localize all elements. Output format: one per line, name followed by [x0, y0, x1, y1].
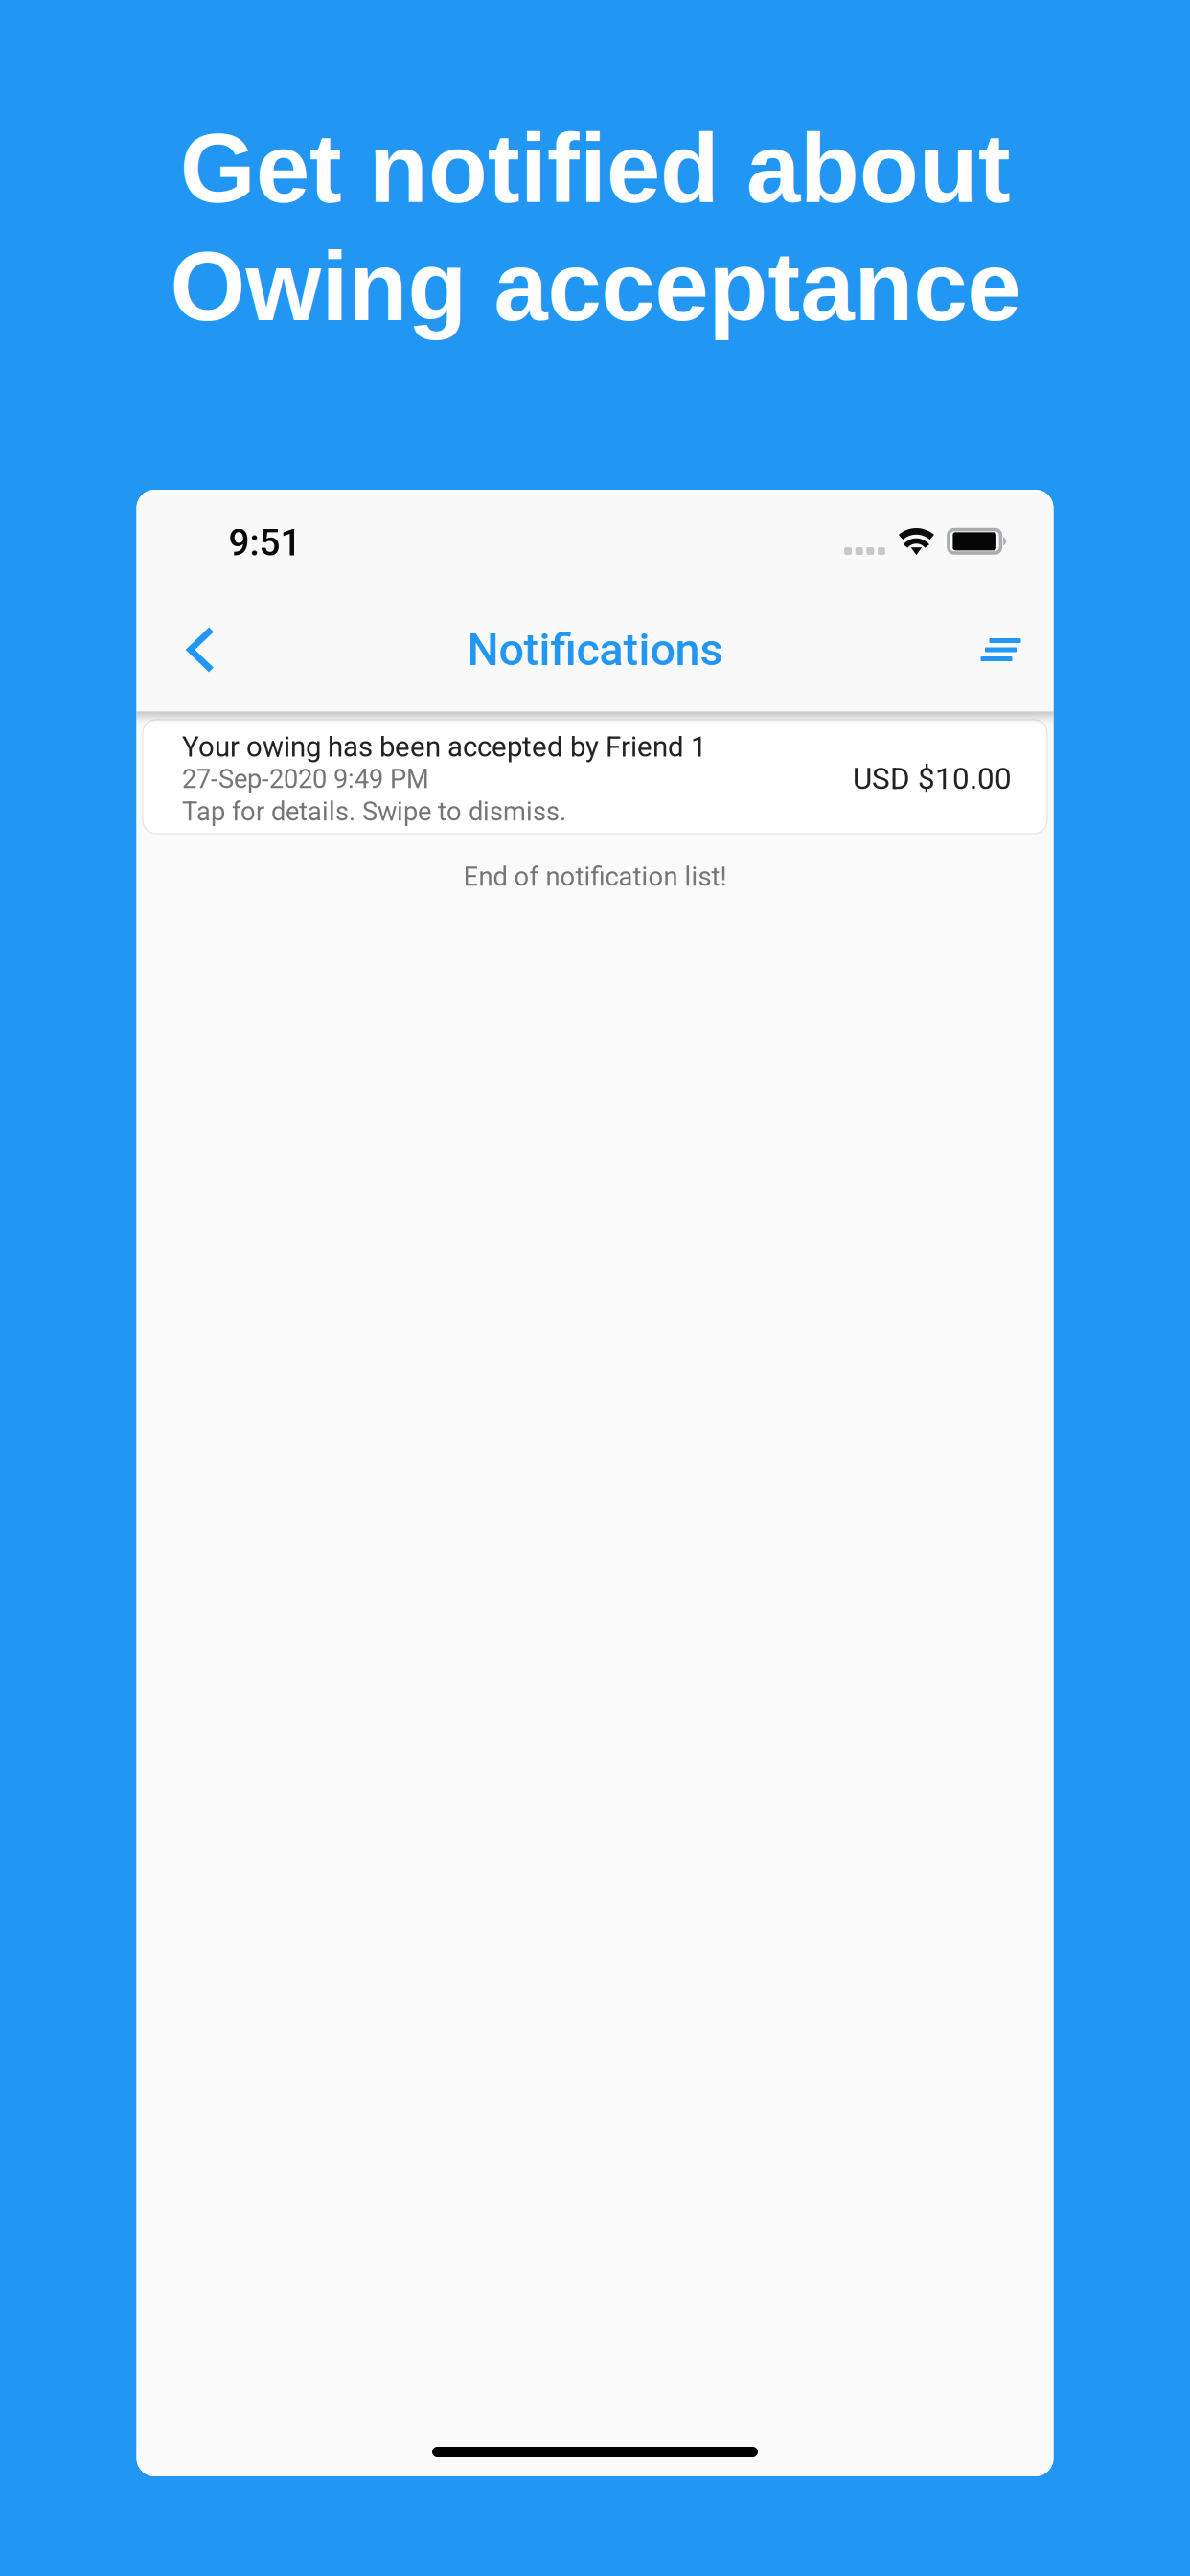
staticText: End of notification list!	[463, 862, 727, 892]
button[interactable]: Sort notifications	[951, 600, 1051, 700]
staticText: Notifications	[467, 624, 723, 676]
staticText: USD $10.00	[853, 761, 1012, 796]
button[interactable]: Your owing has been accepted by Friend 1	[143, 720, 1047, 834]
staticText: Get notified about Owing acceptance	[170, 114, 1020, 341]
button[interactable]: Back	[151, 600, 251, 700]
staticText: Tap for details. Swipe to dismiss.	[182, 796, 566, 827]
staticText: 9:51	[229, 521, 301, 564]
staticText: Your owing has been accepted by Friend 1	[182, 731, 706, 764]
staticText: 27-Sep-2020 9:49 PM	[182, 764, 429, 794]
